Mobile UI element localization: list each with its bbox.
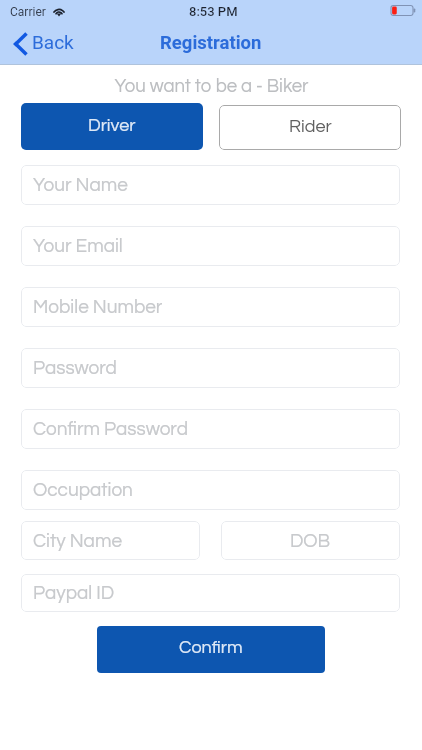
staticText: Carrier [10,5,46,19]
staticText: Confirm [179,638,243,657]
button[interactable]: Driver [21,103,203,150]
staticText: Your Name [33,175,128,195]
button[interactable]: Your Name [21,165,400,205]
staticText: City Name [33,531,122,551]
button[interactable]: Confirm Password [21,409,400,449]
staticText: Registration [160,32,262,54]
button[interactable]: Rider [219,105,401,150]
button[interactable]: Occupation [21,470,400,510]
staticText: Rider [289,117,332,136]
staticText: You want to be a - Biker [114,77,309,96]
staticText: DOB [290,531,331,551]
staticText: Mobile Number [33,297,163,317]
staticText: Password [33,358,117,378]
staticText: Paypal ID [33,583,115,603]
button[interactable]: Your Email [21,226,400,266]
staticText: Confirm Password [33,419,188,439]
button[interactable]: Paypal ID [21,574,400,612]
staticText: Driver [88,116,136,135]
staticText: Back [32,31,74,53]
button[interactable]: Back [4,26,84,62]
button[interactable]: Password [21,348,400,388]
staticText: 8:53 PM [189,4,238,19]
staticText: Your Email [33,236,123,256]
button[interactable]: Mobile Number [21,287,400,327]
button[interactable]: Confirm [97,626,325,673]
button[interactable]: DOB [221,521,400,560]
staticText: Occupation [33,480,133,500]
other: Back [14,33,27,55]
button[interactable]: City Name [21,521,200,560]
